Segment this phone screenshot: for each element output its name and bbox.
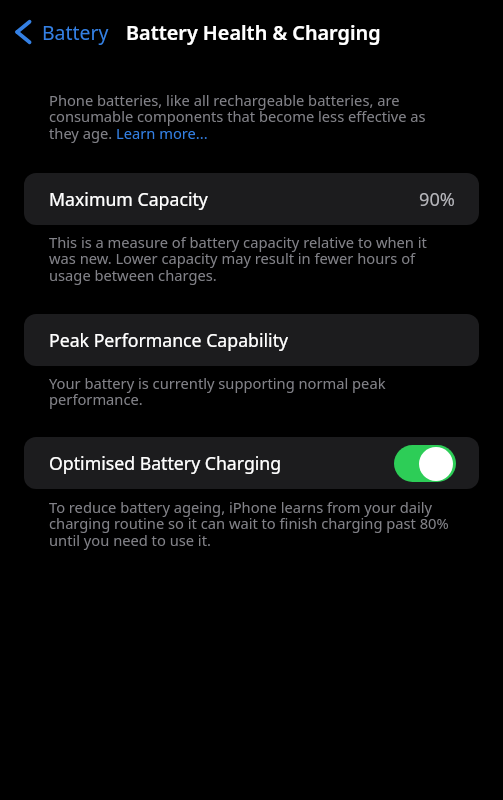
staticText: Peak Performance Capability xyxy=(49,328,289,352)
staticText: 90% xyxy=(419,187,455,212)
button[interactable]: Optimised Battery Charging toggle xyxy=(394,445,456,482)
button[interactable]: Peak Performance Capability xyxy=(24,314,479,366)
staticText: To reduce battery ageing, iPhone learns … xyxy=(49,497,451,551)
button[interactable]: Maximum Capacity xyxy=(24,173,479,225)
staticText: Maximum Capacity xyxy=(49,187,208,211)
staticText: Battery xyxy=(42,19,109,45)
staticText: This is a measure of battery capacity re… xyxy=(49,232,451,286)
button[interactable]: Optimised Battery Charging xyxy=(24,437,479,489)
button[interactable]: Back to Battery xyxy=(12,19,109,45)
staticText: Optimised Battery Charging xyxy=(49,451,282,475)
staticText: Battery Health & Charging xyxy=(126,19,381,46)
staticText: Your battery is currently supporting nor… xyxy=(49,373,451,410)
staticText: Phone batteries, like all rechargeable b… xyxy=(49,90,451,144)
